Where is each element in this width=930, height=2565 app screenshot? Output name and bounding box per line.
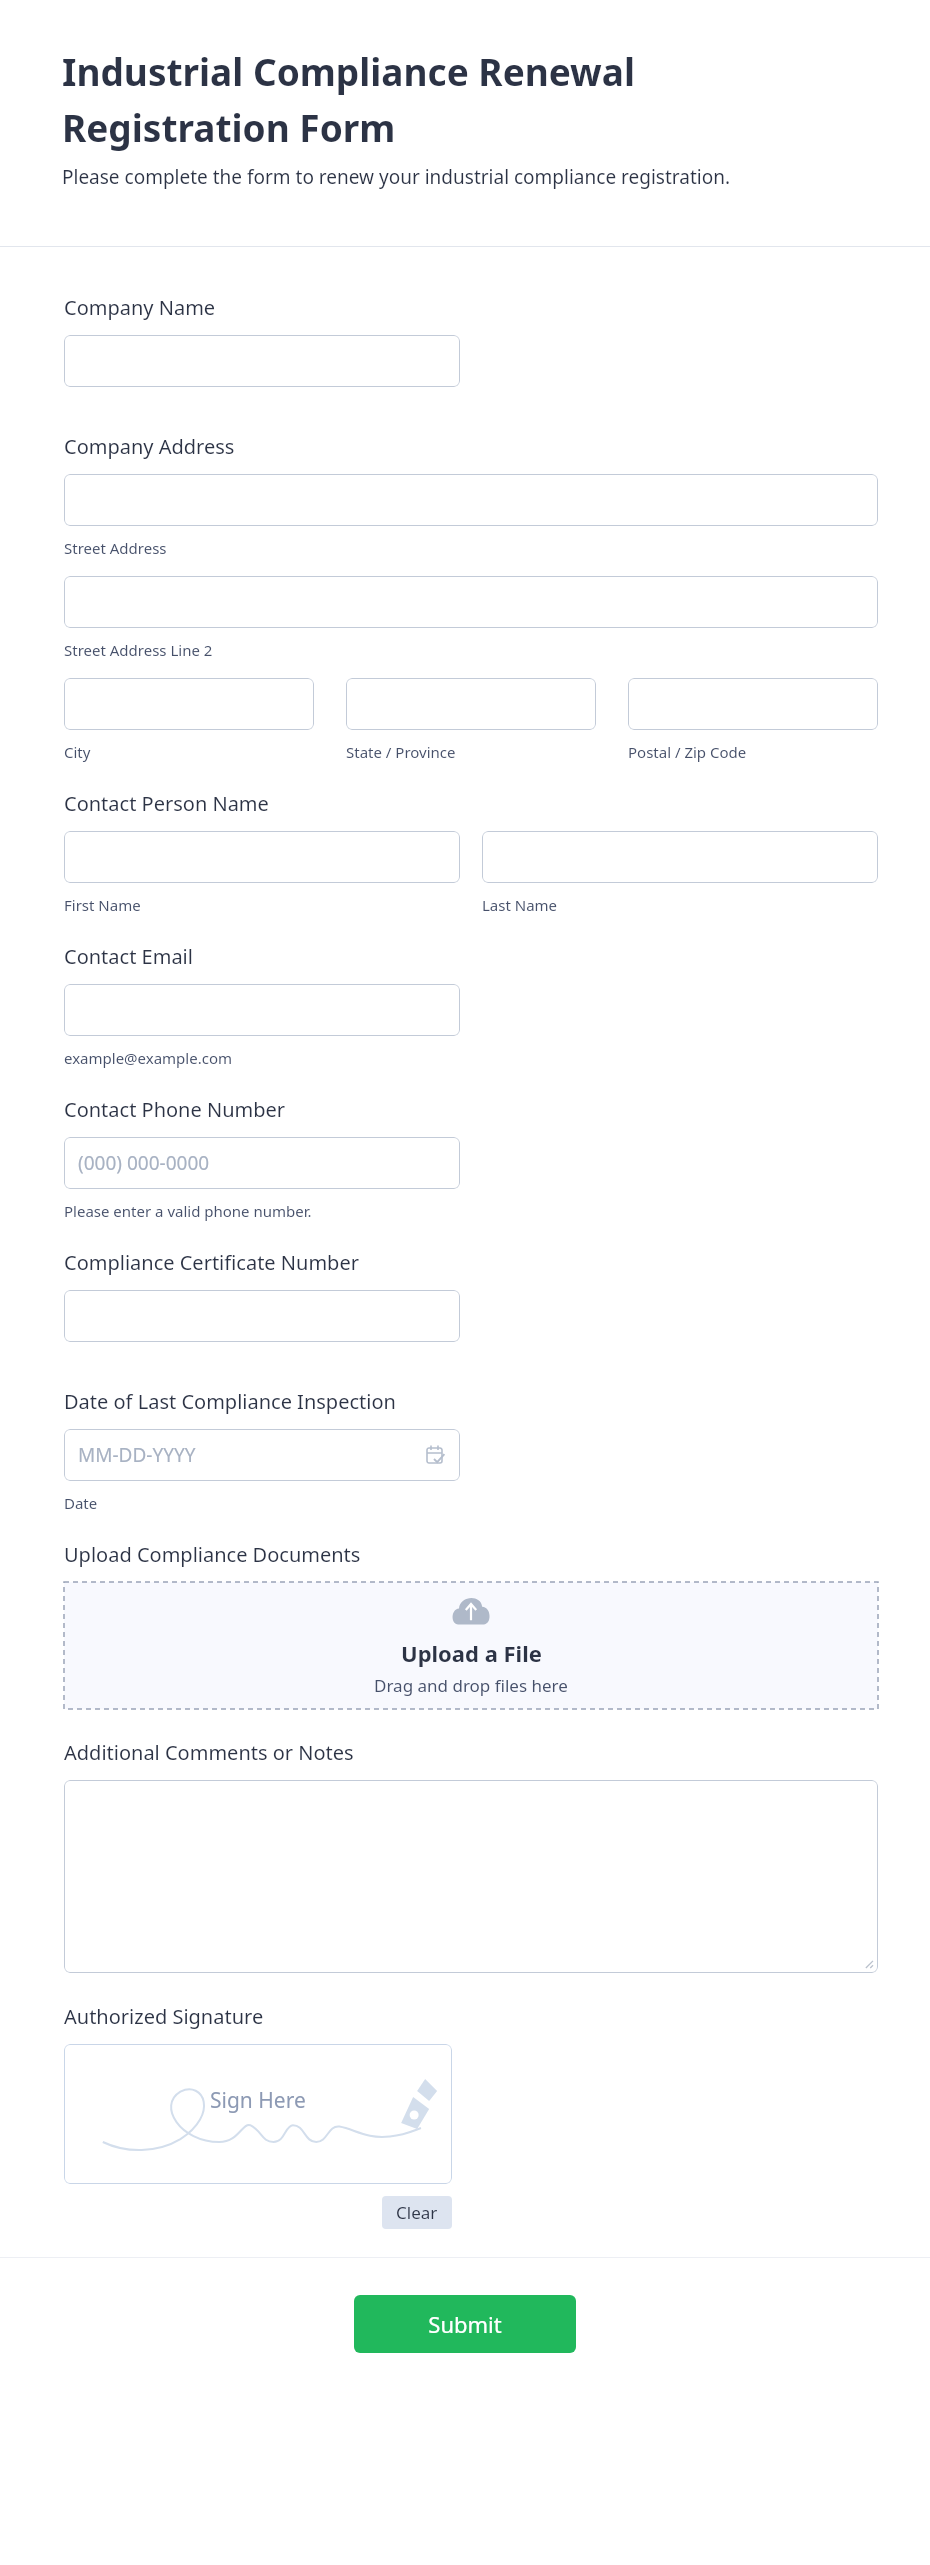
- staticText: MM-DD-YYYY: [78, 1442, 196, 1468]
- button[interactable]: [64, 474, 878, 526]
- staticText: State / Province: [346, 742, 456, 762]
- button[interactable]: [64, 678, 314, 730]
- staticText: Postal / Zip Code: [628, 742, 747, 762]
- button[interactable]: Submit: [354, 2295, 576, 2353]
- staticText: Please enter a valid phone number.: [64, 1201, 312, 1221]
- staticText: Submit: [428, 2309, 502, 2339]
- button[interactable]: [64, 335, 460, 387]
- button[interactable]: [346, 678, 596, 730]
- staticText: Contact Person Name: [64, 790, 269, 817]
- staticText: Authorized Signature: [64, 2003, 264, 2030]
- button[interactable]: [64, 984, 460, 1036]
- staticText: Street Address Line 2: [64, 640, 213, 660]
- button[interactable]: [64, 1780, 878, 1973]
- staticText: City: [64, 742, 91, 762]
- button[interactable]: [482, 831, 878, 883]
- button[interactable]: Clear: [382, 2196, 452, 2229]
- button[interactable]: [628, 678, 878, 730]
- staticText: Last Name: [482, 895, 558, 915]
- staticText: Date: [64, 1493, 98, 1513]
- button[interactable]: [64, 1290, 460, 1342]
- staticText: Contact Phone Number: [64, 1096, 286, 1123]
- staticText: First Name: [64, 895, 141, 915]
- staticText: (000) 000-0000: [78, 1150, 210, 1176]
- staticText: Industrial Compliance Renewal: [62, 46, 635, 96]
- button[interactable]: (000) 000-0000: [64, 1137, 460, 1189]
- button[interactable]: Upload a File: [64, 1582, 878, 1709]
- button[interactable]: Sign Here: [64, 2044, 452, 2184]
- staticText: Upload Compliance Documents: [64, 1541, 361, 1568]
- staticText: Company Name: [64, 294, 216, 321]
- staticText: Street Address: [64, 538, 167, 558]
- staticText: Clear: [396, 2201, 438, 2224]
- staticText: Please complete the form to renew your i…: [62, 164, 730, 190]
- button[interactable]: [64, 831, 460, 883]
- staticText: Drag and drop files here: [374, 1674, 568, 1697]
- staticText: Company Address: [64, 433, 235, 460]
- staticText: example@example.com: [64, 1048, 232, 1068]
- staticText: Additional Comments or Notes: [64, 1739, 354, 1766]
- button[interactable]: MM-DD-YYYY: [64, 1429, 460, 1481]
- staticText: Date of Last Compliance Inspection: [64, 1388, 396, 1415]
- staticText: Contact Email: [64, 943, 193, 970]
- button[interactable]: [64, 576, 878, 628]
- staticText: Upload a File: [401, 1638, 542, 1668]
- staticText: Sign Here: [210, 2086, 306, 2115]
- staticText: Registration Form: [62, 102, 396, 152]
- staticText: Compliance Certificate Number: [64, 1249, 359, 1276]
